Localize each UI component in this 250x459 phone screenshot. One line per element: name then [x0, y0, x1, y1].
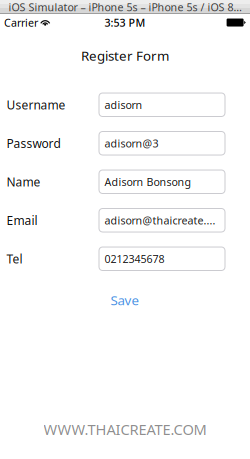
staticText: Tel	[6, 251, 22, 267]
button[interactable]: adisorn@3	[99, 131, 225, 155]
staticText: Carrier	[4, 15, 38, 30]
button[interactable]: Adisorn Bonsong	[99, 170, 225, 193]
button[interactable]: Save	[97, 292, 153, 307]
staticText: Password	[6, 135, 60, 151]
staticText: iOS Simulator – iPhone 5s – iPhone 5s / …	[8, 0, 241, 14]
staticText: Email	[6, 212, 37, 228]
staticText: Username	[6, 97, 65, 113]
staticText: 3:53 PM	[104, 15, 145, 30]
staticText: Save	[110, 291, 139, 309]
staticText: WWW.THAICREATE.COM	[43, 419, 206, 439]
staticText: adisorn@3	[104, 136, 158, 150]
staticText: Register Form	[81, 47, 169, 64]
button[interactable]: adisorn	[99, 93, 225, 116]
staticText: adisorn	[104, 98, 142, 112]
button[interactable]: adisorn@thaicreate....	[99, 208, 225, 232]
staticText: adisorn@thaicreate....	[104, 213, 215, 227]
button[interactable]: 0212345678	[99, 247, 225, 270]
staticText: Adisorn Bonsong	[104, 175, 191, 189]
staticText: Name	[6, 174, 40, 190]
staticText: 0212345678	[104, 252, 164, 266]
